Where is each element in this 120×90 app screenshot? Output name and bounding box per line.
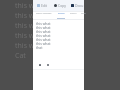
button[interactable]: Detect language [36,12,52,19]
button[interactable]: Span [81,12,84,19]
button[interactable]: French [70,12,77,19]
staticText: Cat [15,51,26,61]
staticText: this what [15,21,46,31]
staticText: Edit [41,3,48,8]
button[interactable]: Copy [38,63,42,67]
button[interactable]: Edit [37,3,48,8]
staticText: this what [15,41,46,51]
staticText: this what [36,21,51,25]
staticText: this what [15,31,46,41]
staticText: this what [15,11,46,21]
button[interactable]: Document [71,3,84,8]
button[interactable]: Copy [54,3,66,8]
staticText: this what [36,37,51,41]
staticText: Copy [58,3,66,8]
staticText: this what [36,33,51,37]
staticText: that [36,45,43,49]
button[interactable]: English [57,12,65,19]
staticText: Document [75,3,84,8]
staticText: French [70,12,77,15]
staticText: English [58,12,65,15]
staticText: Detect language [36,12,52,15]
staticText: Span [81,12,84,15]
staticText: this what [36,41,51,45]
button[interactable]: Share [46,63,50,67]
staticText: this what [36,29,51,33]
staticText: this what [36,25,51,29]
staticText: this what [15,1,46,11]
